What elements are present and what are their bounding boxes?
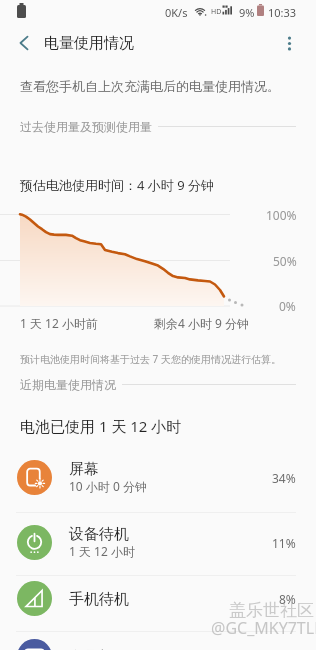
staticText: 9%	[239, 5, 255, 20]
staticText: 设备待机	[69, 525, 129, 544]
staticText: 盖乐世社区	[229, 600, 314, 621]
staticText: 过去使用量及预测使用量	[20, 119, 152, 134]
staticText: 10 小时 0 分钟	[69, 478, 147, 494]
button[interactable]: 屏幕	[0, 446, 316, 508]
staticText: 预估电池使用时间：4 小时 9 分钟	[20, 176, 215, 194]
staticText: 剩余4 小时 9 分钟	[154, 315, 250, 331]
staticText: 0%	[279, 298, 296, 314]
staticText: 电池已使用 1 天 12 小时	[20, 416, 182, 436]
staticText: @GC_MKY7TLK	[211, 617, 316, 639]
staticText: 近期电量使用情况	[20, 377, 116, 392]
staticText: 100%	[266, 207, 297, 223]
button[interactable]: 手机待机	[0, 567, 316, 629]
staticText: 34%	[272, 470, 296, 486]
staticText: 屏幕	[69, 460, 99, 479]
button[interactable]: More options	[270, 24, 308, 62]
staticText: 电量使用情况	[44, 34, 134, 53]
button[interactable]: 息屏提醒	[0, 625, 316, 650]
staticText: 1 天 12 小时前	[20, 315, 98, 331]
staticText: HD	[211, 7, 222, 17]
staticText: 8%	[279, 591, 296, 607]
staticText: 息屏提醒	[69, 648, 129, 650]
button[interactable]: 设备待机	[0, 511, 316, 573]
staticText: 50%	[273, 253, 297, 269]
staticText: 手机待机	[69, 590, 129, 609]
staticText: 预计电池使用时间将基于过去 7 天您的使用情况进行估算。	[20, 352, 281, 366]
staticText: 0K/s	[165, 5, 188, 20]
staticText: 10:33	[268, 5, 297, 20]
button[interactable]: Back	[5, 24, 43, 62]
staticText: 11%	[272, 535, 296, 551]
staticText: 1 天 12 小时	[69, 543, 135, 559]
staticText: 查看您手机自上次充满电后的电量使用情况。	[20, 78, 280, 94]
